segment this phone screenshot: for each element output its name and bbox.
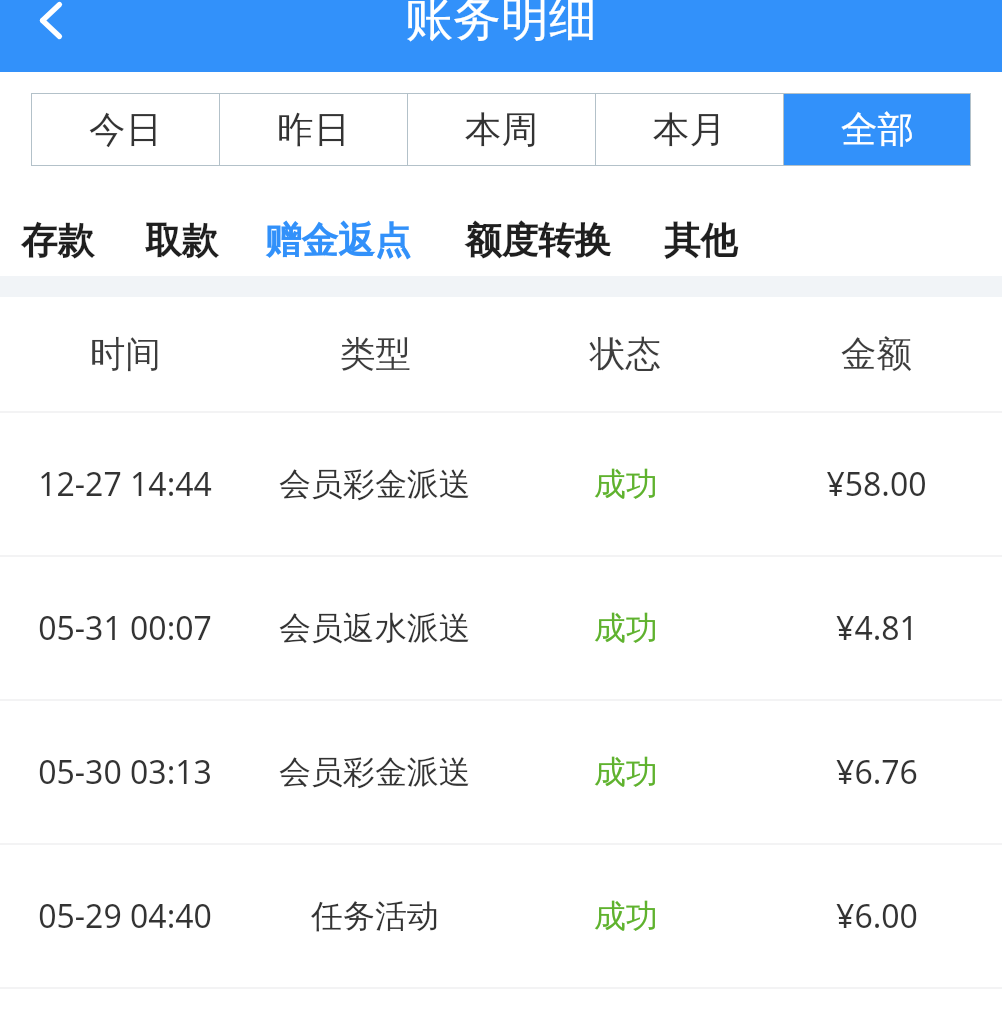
button[interactable]: 其他	[664, 218, 737, 264]
button[interactable]: 05-29 04:40	[0, 845, 1002, 987]
staticText: 类型	[340, 332, 411, 377]
staticText: 额度转换	[465, 218, 611, 264]
button[interactable]: 取款	[145, 218, 218, 264]
staticText: 赠金返点	[265, 218, 411, 264]
staticText: ¥6.76	[836, 750, 918, 794]
button[interactable]: 05-31 00:07	[0, 557, 1002, 699]
staticText: 存款	[21, 218, 94, 264]
staticText: ¥6.00	[836, 894, 918, 938]
staticText: 取款	[145, 218, 218, 264]
staticText: 12-27 14:44	[38, 462, 212, 506]
button[interactable]: Back	[0, 0, 100, 72]
staticText: 全部	[841, 107, 914, 153]
staticText: 任务活动	[311, 896, 439, 936]
staticText: 账务明细	[405, 0, 597, 49]
button[interactable]: 12-27 14:44	[0, 413, 1002, 555]
staticText: 会员彩金派送	[279, 464, 471, 504]
staticText: 成功	[594, 608, 658, 648]
staticText: 成功	[594, 752, 658, 792]
button[interactable]: 今日	[31, 93, 219, 166]
button[interactable]: 全部	[784, 93, 971, 166]
staticText: 今日	[89, 107, 162, 153]
staticText: 本周	[465, 107, 538, 153]
staticText: ¥4.81	[836, 606, 918, 650]
staticText: 昨日	[277, 107, 350, 153]
staticText: 金额	[841, 332, 912, 377]
button[interactable]: 本月	[596, 93, 783, 166]
button[interactable]: 额度转换	[465, 218, 611, 264]
staticText: 05-31 00:07	[38, 606, 212, 650]
button[interactable]: 本周	[408, 93, 595, 166]
staticText: 状态	[590, 332, 661, 377]
staticText: 05-30 03:13	[38, 750, 212, 794]
staticText: 会员彩金派送	[279, 752, 471, 792]
staticText: 其他	[664, 218, 737, 264]
staticText: 05-29 04:40	[38, 894, 212, 938]
button[interactable]: 赠金返点	[265, 218, 411, 264]
staticText: 时间	[90, 332, 161, 377]
button[interactable]: 05-30 03:13	[0, 701, 1002, 843]
staticText: 会员返水派送	[279, 608, 471, 648]
staticText: ¥58.00	[826, 462, 927, 506]
staticText: 成功	[594, 896, 658, 936]
button[interactable]: 昨日	[220, 93, 407, 166]
staticText: 成功	[594, 464, 658, 504]
button[interactable]: 存款	[21, 218, 94, 264]
staticText: 本月	[653, 107, 726, 153]
